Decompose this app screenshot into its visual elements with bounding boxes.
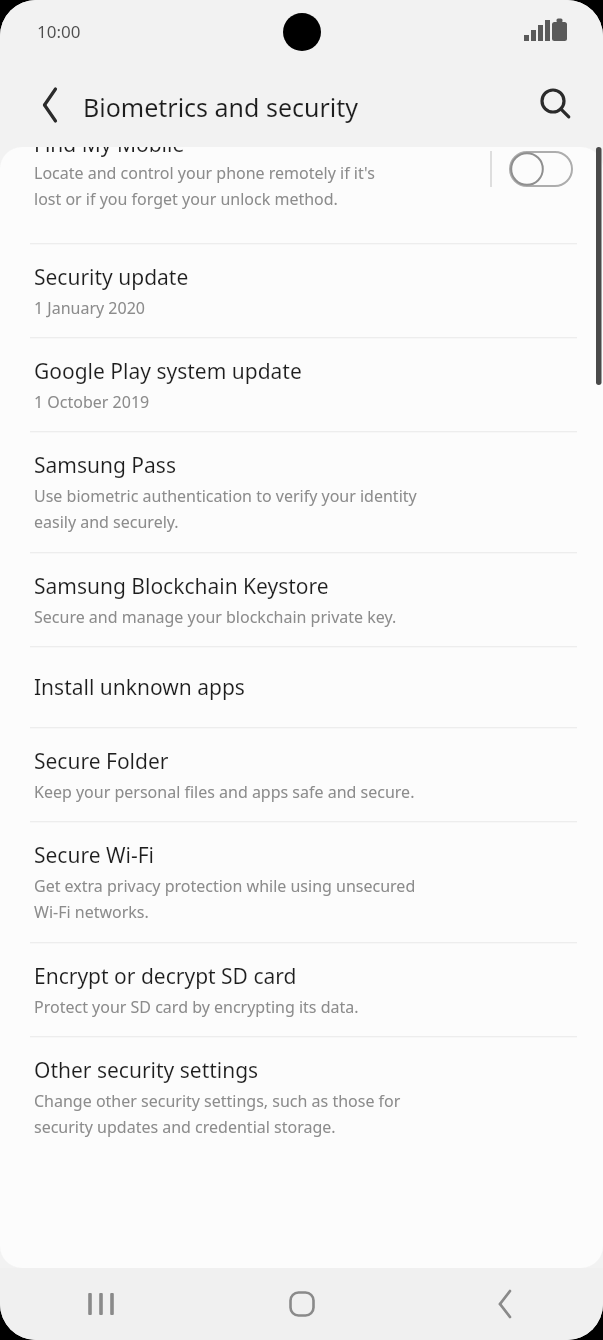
staticText: Secure and manage your blockchain privat… [34, 606, 397, 628]
staticText: Security update [34, 263, 189, 292]
button[interactable]: Secure Wi-Fi [0, 822, 603, 942]
staticText: 10:00 [37, 20, 81, 43]
staticText: Locate and control your phone remotely i… [34, 162, 375, 210]
staticText: 1 October 2019 [34, 391, 150, 413]
staticText: Secure Wi-Fi [34, 841, 155, 870]
staticText: Change other security settings, such as … [34, 1090, 401, 1138]
button[interactable]: Security update [0, 244, 603, 337]
staticText: Google Play system update [34, 357, 302, 386]
button[interactable]: Google Play system update [0, 338, 603, 431]
button[interactable]: Secure Folder [0, 728, 603, 821]
staticText: Secure Folder [34, 747, 169, 776]
staticText: Install unknown apps [34, 673, 245, 702]
button[interactable]: Samsung Pass [0, 432, 603, 552]
button[interactable]: Navigate up [22, 79, 74, 131]
staticText: Biometrics and security [83, 90, 359, 124]
button[interactable]: Find My Mobile [0, 147, 603, 243]
button[interactable]: Other security settings [0, 1037, 603, 1157]
button[interactable]: Find My Mobile toggle [478, 147, 590, 197]
button[interactable]: Install unknown apps [0, 647, 603, 727]
button[interactable]: Encrypt or decrypt SD card [0, 943, 603, 1036]
staticText: Encrypt or decrypt SD card [34, 962, 297, 991]
button[interactable]: Recent apps [0, 1268, 201, 1340]
staticText: Other security settings [34, 1056, 259, 1085]
staticText: 1 January 2020 [34, 297, 145, 319]
button[interactable]: Samsung Blockchain Keystore [0, 553, 603, 646]
staticText: Use biometric authentication to verify y… [34, 485, 417, 533]
button[interactable]: Back [402, 1268, 603, 1340]
staticText: Keep your personal files and apps safe a… [34, 781, 415, 803]
staticText: Protect your SD card by encrypting its d… [34, 996, 359, 1018]
button[interactable]: Home [201, 1268, 402, 1340]
staticText: Get extra privacy protection while using… [34, 875, 416, 923]
button[interactable]: Search [528, 79, 580, 131]
staticText: Find My Mobile [34, 147, 185, 159]
staticText: Samsung Blockchain Keystore [34, 572, 329, 601]
staticText: Samsung Pass [34, 451, 176, 480]
